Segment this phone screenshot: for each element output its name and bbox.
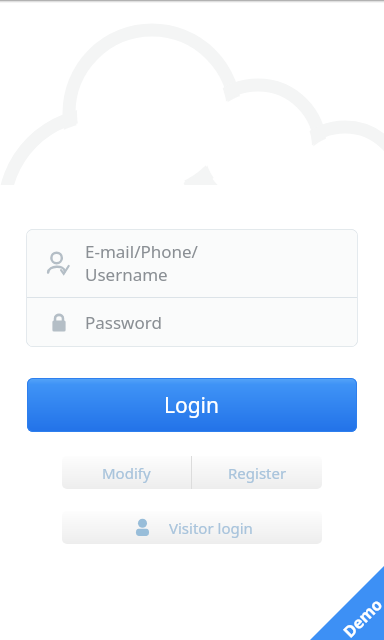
button[interactable]: Demo (310, 566, 384, 640)
button[interactable]: Modify (62, 456, 191, 489)
staticText: E-mail/Phone/ Username (85, 240, 198, 286)
button[interactable]: E-mail/Phone/ Username (26, 229, 358, 297)
button[interactable]: Password (26, 298, 358, 347)
staticText: Demo (338, 594, 384, 640)
staticText: Password (85, 311, 162, 334)
button[interactable]: Register (192, 456, 322, 489)
staticText: Register (228, 463, 287, 483)
button[interactable]: Visitor login (62, 511, 322, 544)
button[interactable]: Login (27, 378, 357, 432)
staticText: Visitor login (169, 518, 253, 538)
staticText: Modify (102, 463, 151, 483)
staticText: Login (164, 391, 220, 420)
